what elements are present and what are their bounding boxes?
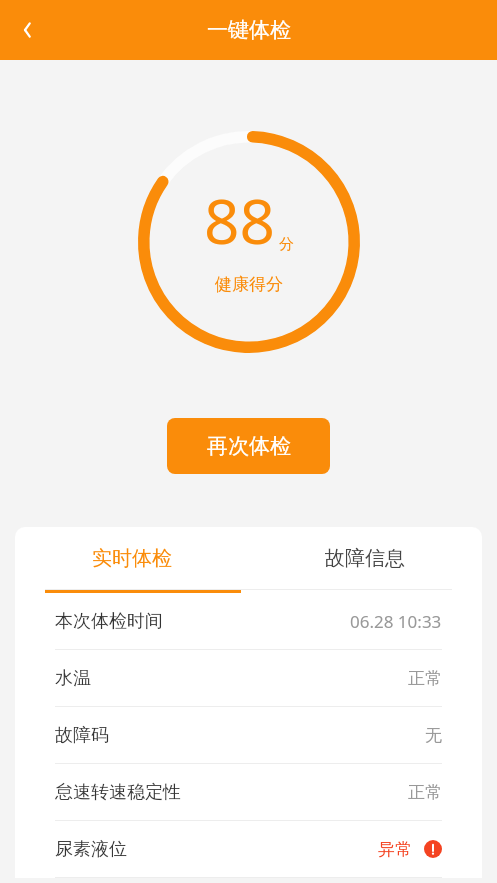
button[interactable]: 再次体检 (167, 418, 330, 474)
staticText: 尿素液位 (55, 838, 127, 861)
button[interactable]: 故障码 (15, 707, 482, 763)
staticText: 实时体检 (92, 546, 172, 571)
button[interactable]: 故障信息 (248, 527, 482, 589)
staticText: 无 (425, 725, 442, 746)
staticText: 本次体检时间 (55, 610, 163, 633)
staticText: 再次体检 (207, 433, 291, 459)
staticText: 异常 (378, 839, 412, 860)
staticText: 正常 (408, 668, 442, 689)
staticText: 水温 (55, 667, 91, 690)
staticText: 故障信息 (325, 546, 405, 571)
button[interactable]: 实时体检 (15, 527, 248, 589)
staticText: 分 (279, 235, 294, 254)
button[interactable]: 本次体检时间 (15, 593, 482, 649)
button[interactable]: Back (0, 2, 56, 58)
staticText: 一键体检 (207, 17, 291, 43)
button[interactable]: 尿素液位 (15, 821, 482, 877)
button[interactable]: 水温 (15, 650, 482, 706)
staticText: 健康得分 (215, 274, 283, 295)
staticText: 正常 (408, 782, 442, 803)
staticText: 故障码 (55, 724, 109, 747)
staticText: 88 (204, 178, 275, 262)
staticText: 怠速转速稳定性 (55, 781, 181, 804)
staticText: 06.28 10:33 (350, 610, 442, 633)
button[interactable]: 怠速转速稳定性 (15, 764, 482, 820)
